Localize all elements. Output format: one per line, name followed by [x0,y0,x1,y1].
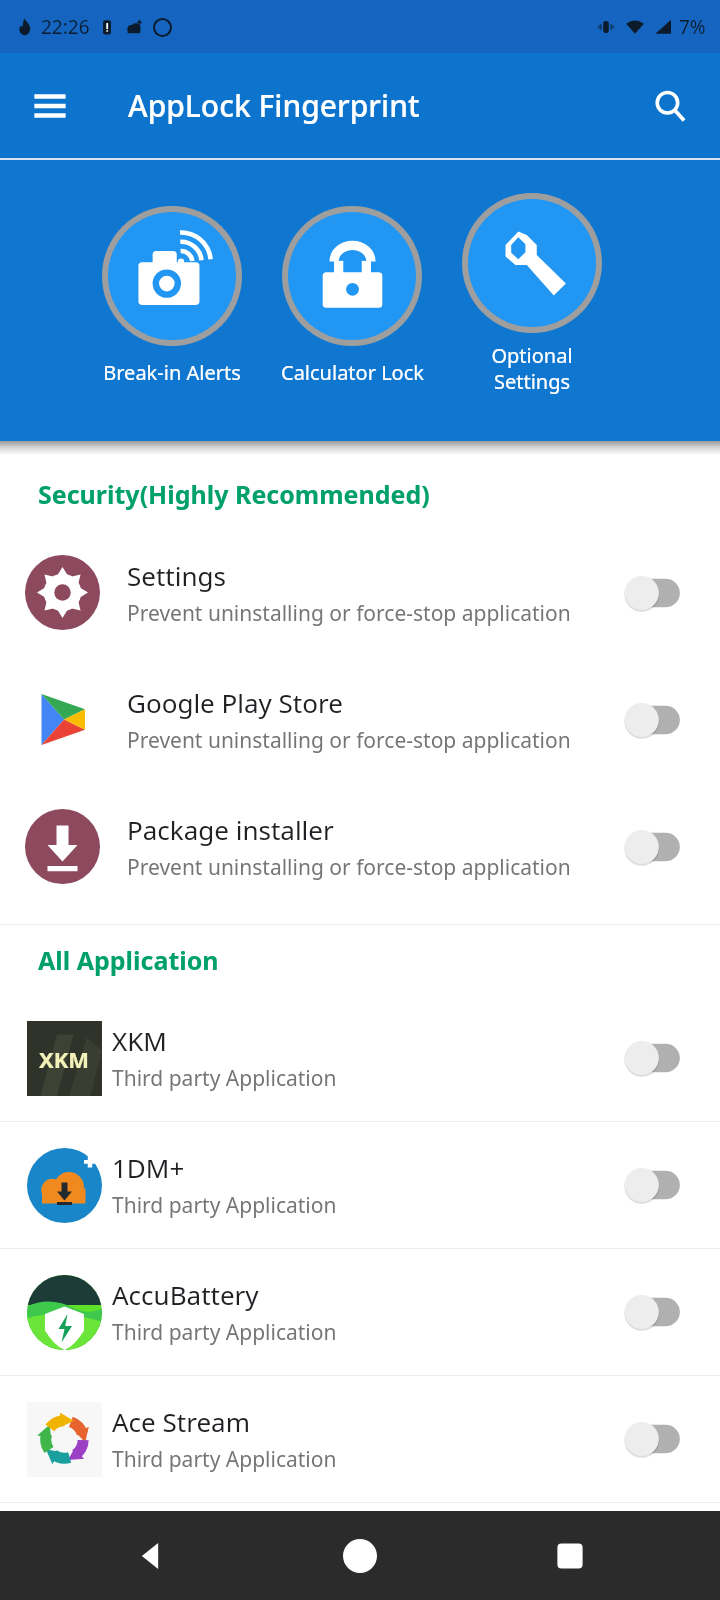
staticText: 7% [679,14,706,40]
staticText: 1DM+ [112,1150,185,1185]
button[interactable]: Toggle [616,697,692,743]
button[interactable]: Toggle [616,570,692,616]
button[interactable]: Calculator Lock [267,199,437,386]
staticText: Package installer [127,812,334,847]
button[interactable]: Optional Settings [447,186,617,395]
staticText: Security(Highly Recommended) [38,477,430,511]
button[interactable]: AccuBattery [0,1249,720,1375]
button[interactable]: XKM [0,995,720,1121]
staticText: Optional Settings [491,342,573,395]
staticText: Prevent uninstalling or force-stop appli… [127,726,571,755]
button[interactable]: Back [120,1526,180,1586]
staticText: Settings [127,558,226,593]
button[interactable]: Toggle [616,1416,692,1462]
button[interactable]: Toggle [616,824,692,870]
staticText: XKM [112,1023,167,1058]
staticText: AppLock Fingerprint [128,85,420,126]
staticText: Ace Stream [112,1404,250,1439]
staticText: AccuBattery [112,1277,259,1312]
staticText: Third party Application [112,1064,337,1093]
button[interactable]: 1DM+ [0,1122,720,1248]
button[interactable]: Home [330,1526,390,1586]
staticText: XKM [39,1044,90,1074]
staticText: Third party Application [112,1445,337,1474]
staticText: 22:26 [41,14,90,40]
button[interactable]: Recent apps [540,1526,600,1586]
button[interactable]: Toggle [616,1289,692,1335]
staticText: All Application [38,943,219,977]
button[interactable]: Break-in Alerts [87,199,257,386]
button[interactable]: Search [646,82,694,130]
staticText: Third party Application [112,1191,337,1220]
staticText: Prevent uninstalling or force-stop appli… [127,853,571,882]
staticText: Prevent uninstalling or force-stop appli… [127,599,571,628]
button[interactable]: Settings [0,529,720,656]
button[interactable]: Package installer [0,783,720,910]
button[interactable]: Google Play Store [0,656,720,783]
staticText: Calculator Lock [281,359,424,386]
button[interactable]: Toggle [616,1162,692,1208]
button[interactable]: Ace Stream [0,1376,720,1502]
button[interactable]: Menu [26,82,74,130]
staticText: Google Play Store [127,685,343,720]
staticText: Third party Application [112,1318,337,1347]
button[interactable]: Toggle [616,1035,692,1081]
staticText: Break-in Alerts [103,359,241,386]
